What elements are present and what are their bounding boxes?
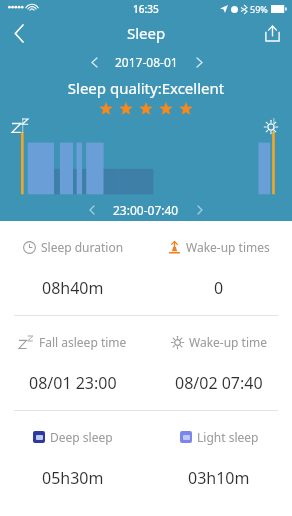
staticText: 0 bbox=[214, 277, 224, 299]
staticText: 08/02 07:40 bbox=[175, 372, 263, 394]
staticText: 08h40m bbox=[42, 277, 104, 299]
staticText: 08/01 23:00 bbox=[29, 372, 117, 394]
staticText: Wake-up time bbox=[189, 334, 268, 350]
button[interactable]: Previous day bbox=[83, 52, 105, 72]
button[interactable]: Light sleep bbox=[146, 411, 292, 505]
staticText: Deep sleep bbox=[50, 429, 113, 445]
staticText: 23:00-07:40 bbox=[113, 202, 179, 218]
staticText: 2017-08-01 bbox=[115, 54, 178, 70]
button[interactable]: Next day bbox=[188, 52, 210, 72]
staticText: Wake-up times bbox=[186, 239, 270, 255]
button[interactable]: Wake-up times bbox=[146, 221, 292, 315]
staticText: 05h30m bbox=[42, 467, 104, 489]
button[interactable]: Deep sleep bbox=[0, 411, 146, 505]
button[interactable]: Wake-up time bbox=[146, 316, 292, 410]
button[interactable]: Back bbox=[0, 18, 38, 48]
staticText: 16:35 bbox=[133, 2, 159, 16]
button[interactable]: Sleep duration bbox=[0, 221, 146, 315]
button[interactable]: Next range bbox=[189, 200, 211, 220]
staticText: 03h10m bbox=[188, 467, 250, 489]
button[interactable]: Share bbox=[252, 18, 292, 48]
staticText: Light sleep bbox=[197, 429, 259, 445]
staticText: Sleep bbox=[127, 23, 166, 43]
staticText: Sleep duration bbox=[41, 239, 124, 255]
staticText: Sleep quality:Excellent bbox=[0, 78, 292, 98]
staticText: Fall asleep time bbox=[39, 334, 127, 350]
staticText: 59% bbox=[250, 3, 268, 15]
button[interactable]: Fall asleep time bbox=[0, 316, 146, 410]
button[interactable]: Previous range bbox=[81, 200, 103, 220]
